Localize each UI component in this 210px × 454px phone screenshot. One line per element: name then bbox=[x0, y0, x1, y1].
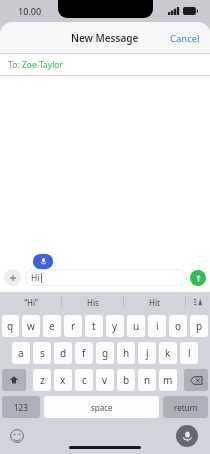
button[interactable]: p bbox=[190, 315, 208, 337]
button[interactable]: z bbox=[33, 369, 51, 391]
button[interactable]: g bbox=[96, 342, 114, 364]
button[interactable]: Send bbox=[190, 270, 206, 286]
staticText: g bbox=[102, 346, 109, 360]
button[interactable]: His bbox=[62, 292, 123, 312]
button[interactable]: Dictate bbox=[176, 425, 198, 447]
staticText: e bbox=[49, 319, 55, 333]
staticText: “Hi” bbox=[24, 297, 38, 308]
button[interactable]: Shift bbox=[2, 369, 26, 391]
button[interactable]: n bbox=[138, 369, 156, 391]
staticText: v bbox=[102, 373, 108, 387]
button[interactable]: s bbox=[33, 342, 51, 364]
button[interactable]: Predictive text bbox=[186, 292, 210, 312]
button[interactable]: x bbox=[54, 369, 72, 391]
button[interactable]: Backspace bbox=[184, 369, 208, 391]
staticText: x bbox=[60, 373, 66, 387]
button[interactable]: Add attachment bbox=[4, 269, 21, 286]
staticText: 10.00 bbox=[18, 5, 42, 17]
button[interactable]: Emoji bbox=[10, 429, 24, 443]
button[interactable]: o bbox=[169, 315, 187, 337]
staticText: Cancel bbox=[170, 32, 200, 45]
staticText: m bbox=[163, 373, 173, 387]
staticText: z bbox=[40, 373, 45, 387]
button[interactable]: u bbox=[127, 315, 145, 337]
staticText: return bbox=[174, 402, 198, 413]
button[interactable]: Cancel bbox=[160, 26, 210, 51]
staticText: a bbox=[18, 346, 24, 360]
staticText: r bbox=[71, 319, 76, 333]
button[interactable]: “Hi” bbox=[0, 292, 61, 312]
button[interactable]: t bbox=[85, 315, 103, 337]
button[interactable]: Hit bbox=[124, 292, 185, 312]
button[interactable]: v bbox=[96, 369, 114, 391]
staticText: s bbox=[40, 346, 45, 360]
button[interactable]: e bbox=[43, 315, 61, 337]
button[interactable]: f bbox=[75, 342, 93, 364]
button[interactable]: To: bbox=[0, 54, 210, 76]
button[interactable]: l bbox=[180, 342, 198, 364]
button[interactable]: space bbox=[44, 396, 159, 418]
staticText: h bbox=[123, 346, 130, 360]
staticText: His bbox=[87, 297, 99, 308]
staticText: j bbox=[146, 346, 149, 360]
staticText: q bbox=[7, 319, 14, 333]
button[interactable]: y bbox=[106, 315, 124, 337]
staticText: To: bbox=[8, 59, 22, 71]
button[interactable]: c bbox=[75, 369, 93, 391]
staticText: p bbox=[196, 319, 203, 333]
staticText: w bbox=[27, 319, 35, 333]
button[interactable]: w bbox=[22, 315, 40, 337]
staticText: f bbox=[82, 346, 86, 360]
button[interactable]: i bbox=[148, 315, 166, 337]
button[interactable]: Hi bbox=[25, 269, 187, 286]
staticText: y bbox=[112, 319, 118, 333]
button[interactable]: 123 bbox=[2, 396, 40, 418]
button[interactable]: q bbox=[2, 315, 19, 337]
staticText: n bbox=[144, 373, 151, 387]
staticText: t bbox=[92, 319, 96, 333]
staticText: o bbox=[175, 319, 182, 333]
staticText: u bbox=[133, 319, 140, 333]
staticText: k bbox=[165, 346, 171, 360]
staticText: l bbox=[188, 346, 191, 360]
staticText: space bbox=[91, 402, 113, 413]
button[interactable]: h bbox=[117, 342, 135, 364]
staticText: Hit bbox=[149, 297, 160, 308]
button[interactable]: r bbox=[64, 315, 82, 337]
button[interactable]: j bbox=[138, 342, 156, 364]
button[interactable]: return bbox=[163, 396, 208, 418]
staticText: c bbox=[82, 373, 87, 387]
staticText: b bbox=[123, 373, 130, 387]
staticText: Hi bbox=[31, 272, 40, 284]
button[interactable]: k bbox=[159, 342, 177, 364]
button[interactable]: a bbox=[12, 342, 30, 364]
staticText: 123 bbox=[14, 402, 28, 413]
button[interactable]: Dictation bbox=[33, 254, 53, 269]
staticText: i bbox=[156, 319, 159, 333]
staticText: d bbox=[60, 346, 67, 360]
button[interactable]: d bbox=[54, 342, 72, 364]
button[interactable]: m bbox=[159, 369, 177, 391]
button[interactable]: b bbox=[117, 369, 135, 391]
staticText: New Message bbox=[71, 31, 139, 45]
staticText: Zoe Taylor bbox=[22, 59, 64, 71]
